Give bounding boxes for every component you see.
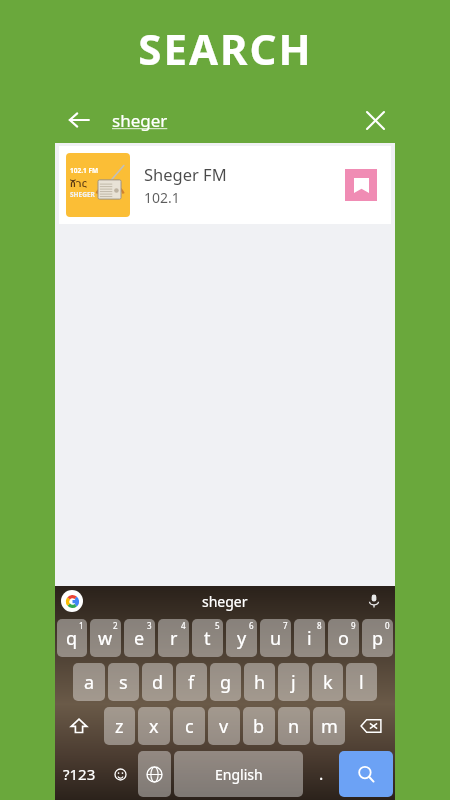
staticText: 102.1: [144, 188, 180, 207]
button[interactable]: .: [306, 751, 336, 797]
button[interactable]: Backspace: [348, 707, 393, 745]
button[interactable]: n: [278, 707, 310, 745]
staticText: SEARCH: [138, 20, 313, 77]
staticText: u: [270, 626, 282, 651]
staticText: SHEGER: [70, 190, 95, 199]
button[interactable]: c: [173, 707, 205, 745]
staticText: g: [220, 670, 232, 695]
staticText: .: [319, 763, 324, 785]
button[interactable]: a: [73, 663, 105, 701]
staticText: c: [185, 714, 194, 739]
button[interactable]: g: [210, 663, 241, 701]
button[interactable]: u: [260, 619, 291, 657]
staticText: q: [66, 626, 78, 651]
staticText: y: [237, 626, 247, 651]
button[interactable]: Shift: [57, 707, 101, 745]
staticText: x: [149, 714, 159, 739]
button[interactable]: y: [226, 619, 257, 657]
button[interactable]: q: [57, 619, 87, 657]
staticText: 3: [147, 620, 152, 631]
staticText: i: [307, 626, 312, 651]
button[interactable]: l: [346, 663, 377, 701]
staticText: d: [152, 670, 164, 695]
button[interactable]: Bookmark: [345, 169, 377, 201]
staticText: 6: [249, 620, 254, 631]
staticText: r: [170, 626, 178, 651]
staticText: p: [372, 626, 384, 651]
button[interactable]: ?123: [57, 751, 102, 797]
staticText: 4: [181, 620, 186, 631]
staticText: Sheger FM: [144, 163, 227, 185]
staticText: f: [188, 670, 195, 695]
button[interactable]: Emoji: [105, 751, 135, 797]
staticText: ?123: [63, 764, 96, 784]
button[interactable]: i: [294, 619, 325, 657]
staticText: ሸገር: [70, 177, 87, 189]
staticText: 8: [317, 620, 322, 631]
staticText: m: [321, 714, 338, 739]
staticText: o: [338, 626, 349, 651]
button[interactable]: Change language: [138, 751, 171, 797]
button[interactable]: Google: [61, 590, 83, 612]
button[interactable]: x: [138, 707, 170, 745]
button[interactable]: Back: [62, 103, 96, 137]
button[interactable]: k: [312, 663, 343, 701]
button[interactable]: r: [158, 619, 189, 657]
button[interactable]: Voice input: [363, 590, 385, 612]
staticText: 5: [215, 620, 220, 631]
button[interactable]: t: [192, 619, 223, 657]
staticText: 2: [113, 620, 118, 631]
staticText: sheger: [202, 592, 248, 611]
button[interactable]: p: [362, 619, 393, 657]
button[interactable]: 102.1 FM: [59, 146, 391, 224]
button[interactable]: Clear search: [358, 103, 392, 137]
staticText: a: [84, 670, 95, 695]
button[interactable]: Search: [339, 751, 393, 797]
button[interactable]: b: [243, 707, 275, 745]
staticText: 9: [351, 620, 356, 631]
button[interactable]: h: [244, 663, 275, 701]
staticText: n: [288, 714, 300, 739]
staticText: 102.1 FM: [70, 166, 99, 175]
button[interactable]: o: [328, 619, 359, 657]
button[interactable]: f: [176, 663, 207, 701]
button[interactable]: d: [142, 663, 173, 701]
button[interactable]: m: [313, 707, 345, 745]
staticText: sheger: [112, 109, 168, 132]
button[interactable]: w: [90, 619, 121, 657]
staticText: l: [359, 670, 364, 695]
staticText: t: [204, 626, 211, 651]
staticText: j: [291, 670, 296, 695]
staticText: 7: [283, 620, 288, 631]
button[interactable]: sheger: [112, 98, 358, 142]
staticText: s: [119, 670, 128, 695]
button[interactable]: j: [278, 663, 309, 701]
staticText: z: [115, 714, 124, 739]
button[interactable]: v: [208, 707, 240, 745]
button[interactable]: English: [174, 751, 303, 797]
staticText: 0: [385, 620, 390, 631]
button[interactable]: s: [108, 663, 139, 701]
button[interactable]: e: [124, 619, 155, 657]
staticText: h: [254, 670, 266, 695]
button[interactable]: z: [104, 707, 135, 745]
staticText: e: [134, 626, 145, 651]
staticText: b: [253, 714, 265, 739]
staticText: w: [98, 626, 113, 651]
staticText: v: [219, 714, 229, 739]
staticText: k: [323, 670, 333, 695]
staticText: English: [215, 765, 263, 784]
staticText: 1: [79, 620, 84, 631]
